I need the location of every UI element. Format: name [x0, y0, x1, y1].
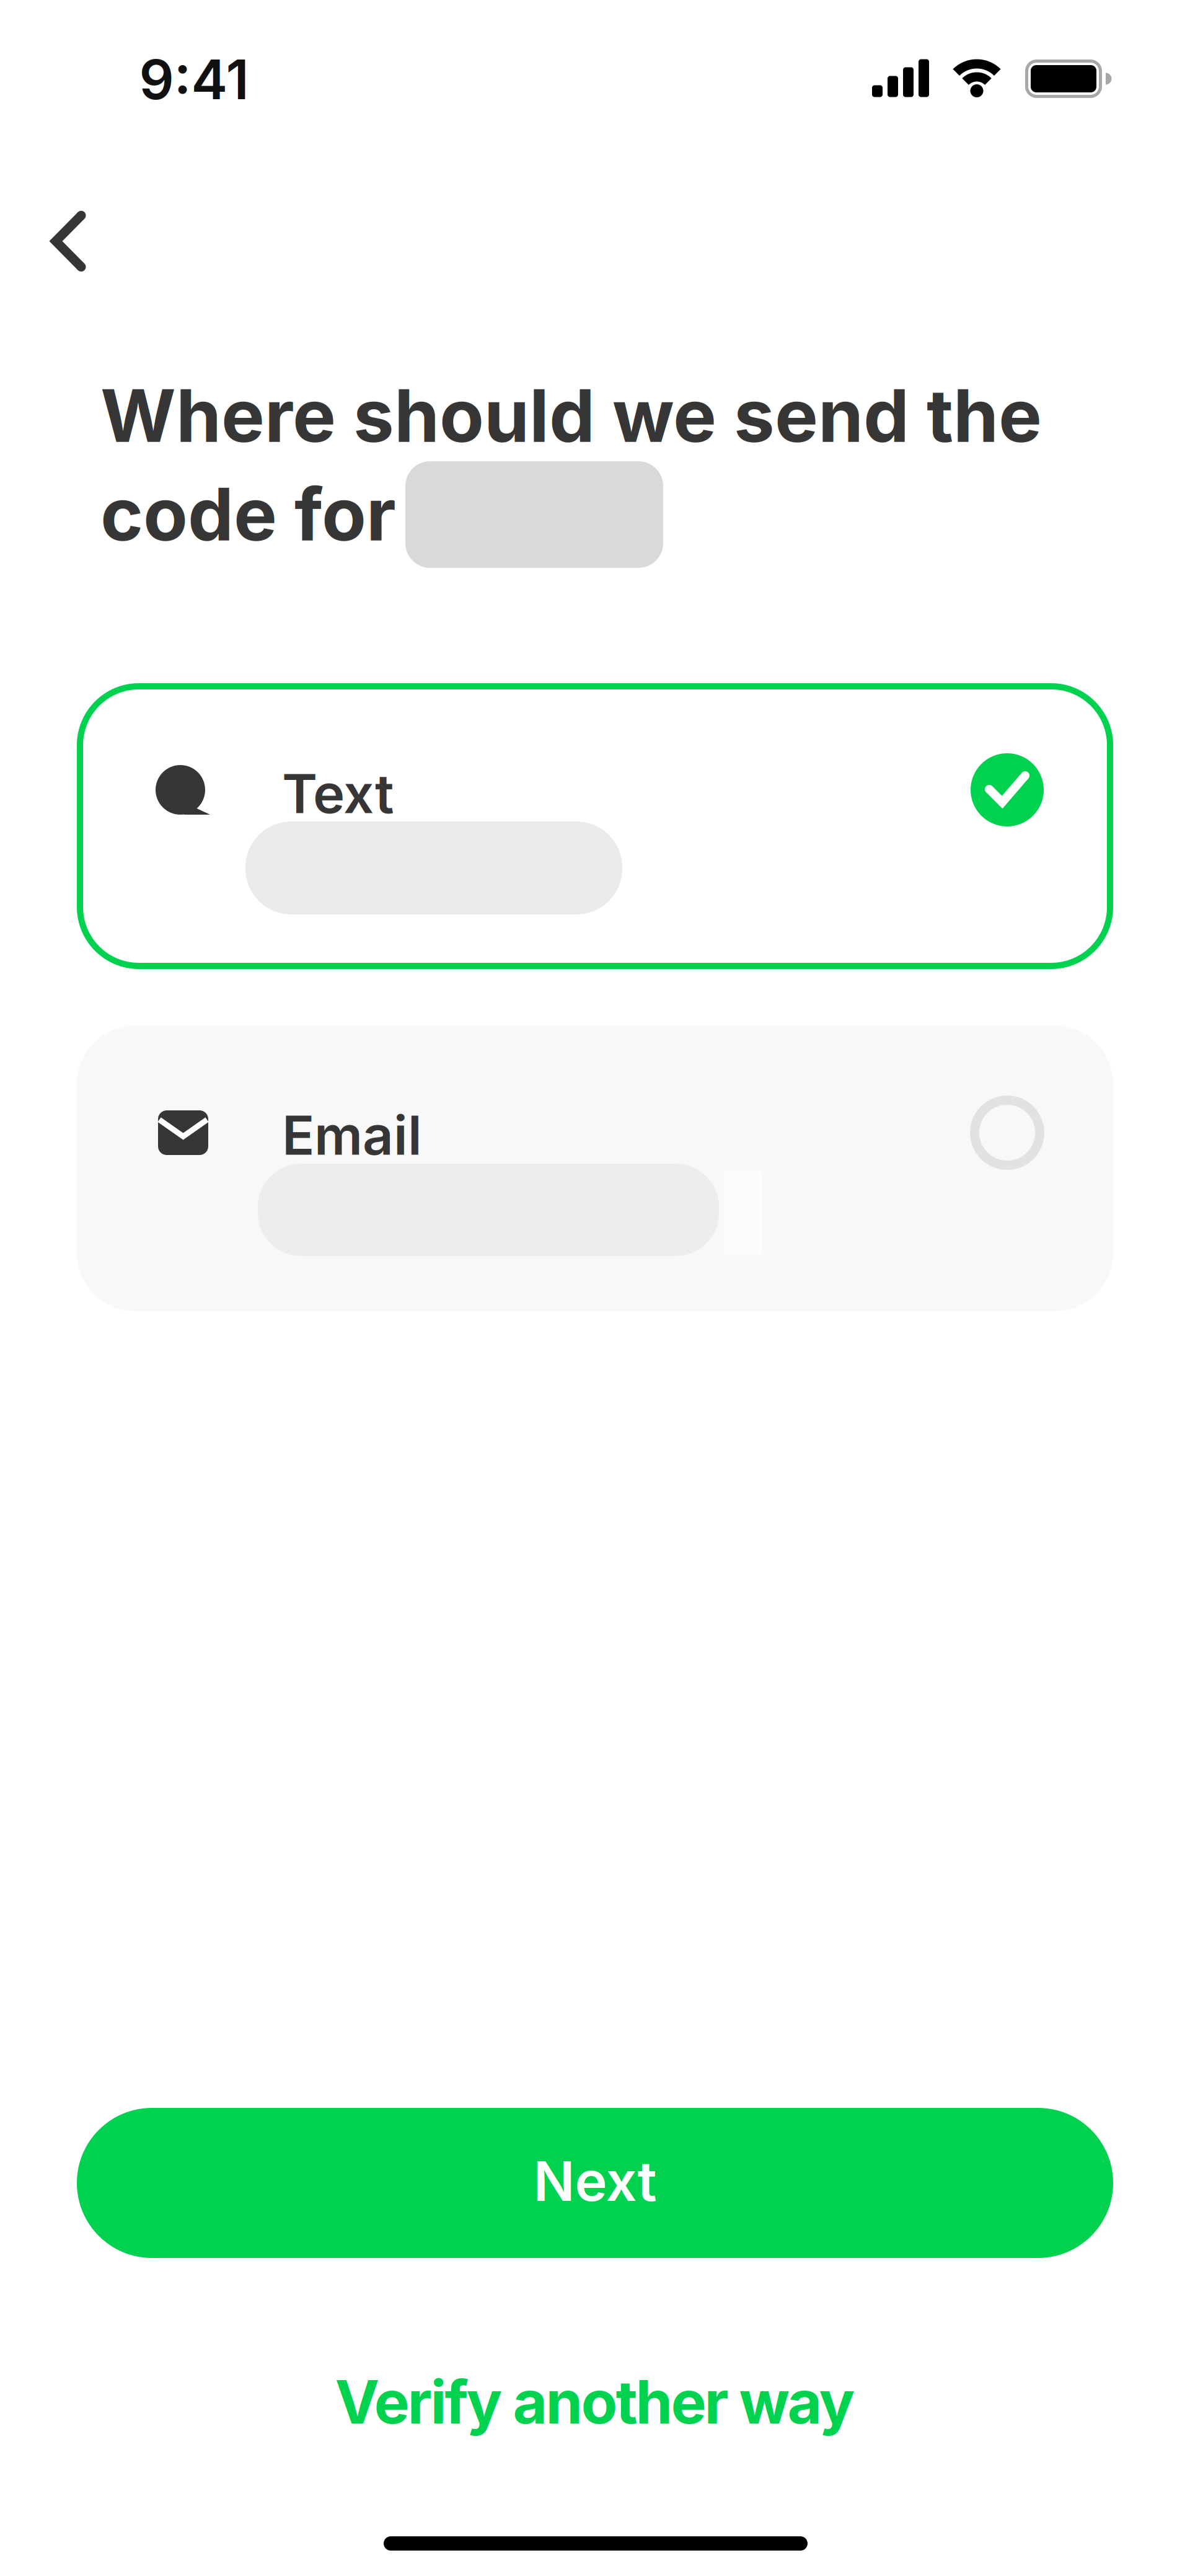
button[interactable]: Email [77, 1025, 1113, 1311]
staticText: code for [100, 471, 396, 557]
staticText: 9:41 [139, 47, 249, 112]
staticText: Next [533, 2149, 657, 2213]
staticText: Where should we send the [100, 372, 1042, 458]
staticText: Text [282, 762, 394, 825]
button[interactable]: Text [77, 683, 1113, 969]
staticText: Email [282, 1103, 422, 1167]
button[interactable]: Next [77, 2108, 1113, 2258]
button[interactable]: Back [49, 208, 89, 274]
staticText: Verify another way [335, 2367, 855, 2437]
button[interactable]: Verify another way [161, 2358, 1029, 2445]
